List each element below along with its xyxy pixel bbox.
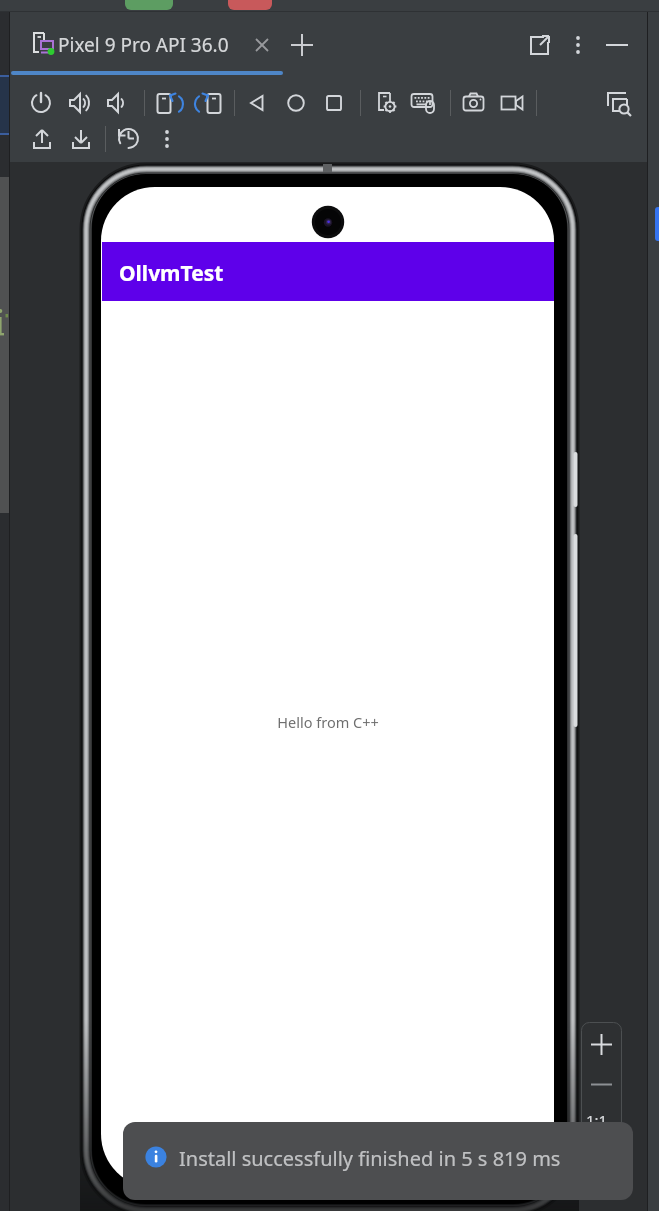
staticText: Hello from C++ xyxy=(102,712,554,732)
staticText: Pixel 9 Pro API 36.0 xyxy=(58,32,229,58)
button[interactable]: More options xyxy=(566,33,590,57)
button[interactable]: Download xyxy=(70,128,92,150)
button[interactable]: Recents xyxy=(323,92,345,114)
button[interactable]: New tab xyxy=(288,31,316,59)
button[interactable]: Volume up xyxy=(68,92,92,114)
button[interactable]: Rotate left xyxy=(156,91,182,115)
button[interactable]: Screenshot xyxy=(461,91,487,115)
button[interactable]: Back xyxy=(247,92,269,114)
button[interactable]: Home xyxy=(285,92,307,114)
button[interactable]: Open in new window xyxy=(527,33,553,59)
button[interactable]: Keyboard and mouse xyxy=(410,90,438,116)
button[interactable]: Pixel 9 Pro API 36.0 xyxy=(26,28,244,62)
button[interactable]: Rotate right xyxy=(196,91,222,115)
staticText: 1:1 xyxy=(586,1110,608,1130)
button[interactable]: Inspect xyxy=(605,90,633,116)
button[interactable]: Zoom in xyxy=(589,1032,614,1057)
button[interactable]: Power xyxy=(30,92,52,114)
staticText: OllvmTest xyxy=(119,259,224,288)
button[interactable]: Minimize xyxy=(604,33,630,57)
button[interactable]: Upload xyxy=(31,128,53,150)
button[interactable]: Tool window xyxy=(655,207,659,241)
button[interactable]: 1:1 xyxy=(586,1110,618,1132)
button[interactable]: Close tab xyxy=(250,33,274,57)
staticText: Install successfully finished in 5 s 819… xyxy=(179,1145,561,1172)
button[interactable]: More xyxy=(156,128,178,150)
button[interactable]: Restore xyxy=(117,127,141,151)
button[interactable]: Volume down xyxy=(106,92,130,114)
button[interactable]: Record screen xyxy=(499,92,525,114)
button[interactable]: Zoom out xyxy=(589,1072,614,1097)
button[interactable]: Device settings xyxy=(375,90,401,116)
